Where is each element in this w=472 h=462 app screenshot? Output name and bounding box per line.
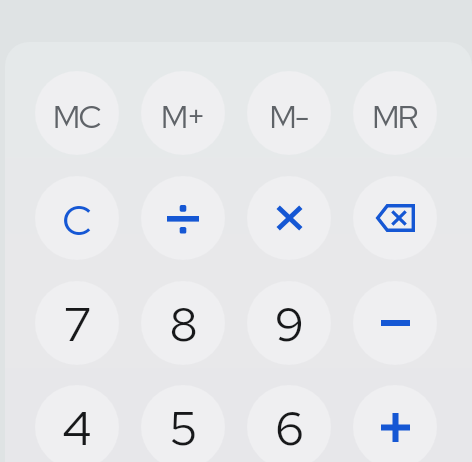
button[interactable]: 6 [247,385,331,462]
staticText: 5 [169,397,198,459]
button[interactable]: 7 [35,281,119,365]
button[interactable]: 5 [141,385,225,462]
staticText: 8 [169,293,198,355]
staticText: 4 [62,397,92,459]
button[interactable]: Plus [353,385,437,462]
button[interactable]: Minus [353,281,437,365]
button[interactable]: Backspace [353,176,437,260]
button[interactable]: 8 [141,281,225,365]
staticText: MR [372,95,417,137]
button[interactable]: M- [247,71,331,155]
staticText: 6 [275,397,304,459]
button[interactable]: Multiply [247,176,331,260]
button[interactable]: M+ [141,71,225,155]
staticText: 7 [63,293,92,355]
staticText: M+ [161,95,204,137]
button[interactable]: MC [35,71,119,155]
button[interactable]: C [35,176,119,260]
button[interactable]: MR [353,71,437,155]
button[interactable]: 9 [247,281,331,365]
button[interactable]: 4 [35,385,119,462]
staticText: M- [269,95,308,137]
staticText: C [62,193,92,247]
staticText: 9 [275,293,304,355]
button[interactable]: Divide [141,176,225,260]
staticText: MC [53,95,100,137]
